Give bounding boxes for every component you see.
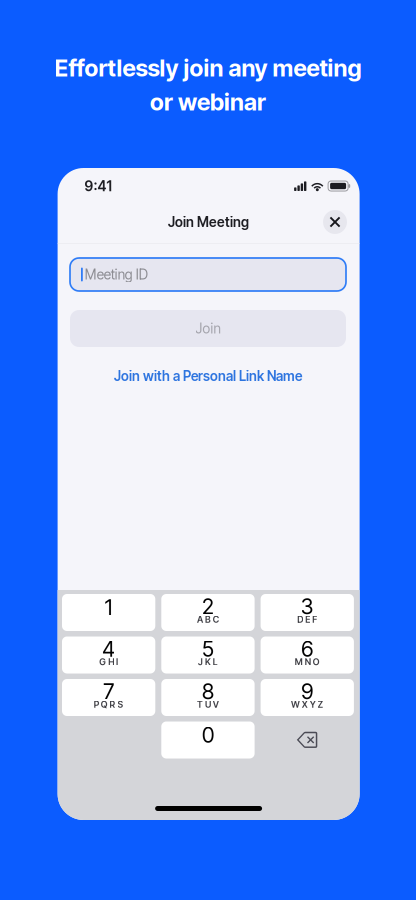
staticText: Y bbox=[310, 699, 316, 710]
staticText: 9:41 bbox=[85, 177, 112, 194]
button[interactable]: 9 bbox=[261, 679, 354, 716]
staticText: G bbox=[99, 656, 106, 667]
button[interactable]: 3 bbox=[261, 594, 354, 631]
button[interactable]: 6 bbox=[261, 636, 354, 673]
staticText: 3 bbox=[301, 594, 314, 619]
staticText: W bbox=[291, 699, 300, 710]
staticText: A bbox=[197, 614, 203, 625]
staticText: Z bbox=[318, 699, 324, 710]
button[interactable]: 7 bbox=[62, 679, 155, 716]
staticText: 1 bbox=[105, 595, 113, 620]
staticText: 9 bbox=[301, 679, 313, 704]
staticText: S bbox=[117, 699, 123, 710]
staticText: 0 bbox=[202, 722, 214, 748]
staticText: 5 bbox=[202, 636, 214, 662]
button[interactable]: Delete bbox=[261, 721, 354, 758]
button[interactable]: 2 bbox=[161, 594, 255, 631]
staticText: R bbox=[110, 699, 116, 710]
staticText: Join Meeting bbox=[168, 214, 249, 230]
button[interactable]: 1 bbox=[62, 594, 155, 631]
staticText: L bbox=[213, 656, 218, 667]
staticText: X bbox=[302, 699, 308, 710]
button[interactable]: Join bbox=[70, 310, 346, 347]
staticText: P bbox=[94, 699, 99, 710]
staticText: K bbox=[205, 656, 211, 667]
staticText: 6 bbox=[301, 636, 313, 662]
staticText: 2 bbox=[202, 594, 214, 619]
staticText: H bbox=[108, 656, 114, 667]
staticText: or webinar bbox=[150, 88, 266, 116]
button[interactable]: 5 bbox=[161, 636, 255, 673]
staticText: F bbox=[312, 614, 317, 625]
staticText: 4 bbox=[102, 636, 115, 662]
staticText: U bbox=[205, 699, 211, 710]
button[interactable]: 8 bbox=[161, 679, 255, 716]
button[interactable]: 4 bbox=[62, 636, 155, 673]
staticText: 8 bbox=[202, 679, 214, 704]
staticText: C bbox=[213, 614, 219, 625]
staticText: Join with a Personal Link Name bbox=[114, 368, 302, 384]
staticText: M bbox=[295, 656, 303, 667]
staticText: Q bbox=[101, 699, 108, 710]
button[interactable]: Join with a Personal Link Name bbox=[70, 366, 346, 386]
button[interactable]: 0 bbox=[161, 721, 255, 758]
staticText: N bbox=[305, 656, 311, 667]
staticText: T bbox=[197, 699, 203, 710]
staticText: V bbox=[213, 699, 219, 710]
button[interactable]: Close bbox=[319, 206, 351, 238]
staticText: I bbox=[116, 656, 118, 667]
staticText: J bbox=[198, 656, 203, 667]
staticText: 7 bbox=[103, 679, 114, 704]
staticText: E bbox=[305, 614, 310, 625]
staticText: Join bbox=[195, 320, 220, 337]
staticText: B bbox=[205, 614, 211, 625]
staticText: Meeting ID bbox=[85, 266, 148, 283]
staticText: O bbox=[313, 656, 320, 667]
staticText: Effortlessly join any meeting bbox=[54, 54, 361, 82]
staticText: D bbox=[297, 614, 303, 625]
